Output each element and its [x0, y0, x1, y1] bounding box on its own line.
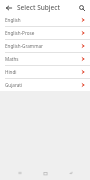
staticText: Select Subject: [17, 3, 61, 12]
button[interactable]: Back: [3, 2, 14, 13]
button[interactable]: Search: [76, 2, 87, 13]
button[interactable]: English-Prose: [0, 27, 90, 39]
button[interactable]: Hindi: [0, 66, 90, 78]
button[interactable]: Gujarati: [0, 79, 90, 91]
staticText: Maths: [5, 56, 81, 62]
staticText: Gujarati: [5, 82, 81, 88]
staticText: English-Grammar: [5, 43, 81, 49]
button[interactable]: Maths: [0, 53, 90, 65]
staticText: English: [5, 17, 81, 23]
button[interactable]: Back: [65, 167, 77, 179]
button[interactable]: English-Grammar: [0, 40, 90, 52]
button[interactable]: Recents: [14, 167, 26, 179]
staticText: Hindi: [5, 69, 81, 75]
button[interactable]: English: [0, 14, 90, 26]
button[interactable]: Home: [39, 167, 51, 179]
staticText: English-Prose: [5, 30, 81, 36]
